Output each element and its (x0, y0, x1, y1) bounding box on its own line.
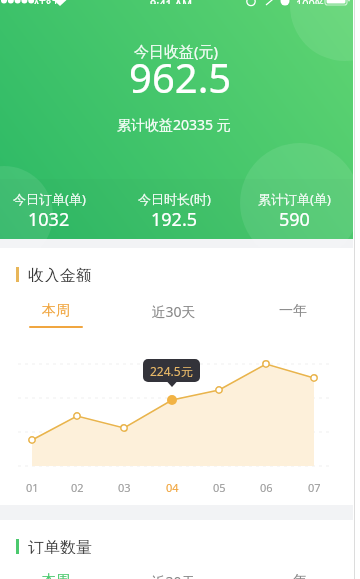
button[interactable]: 近30天 (128, 572, 218, 579)
staticText: 03 (118, 480, 131, 495)
staticText: 累计收益20335 元 (117, 115, 231, 134)
button[interactable]: 本周 (11, 302, 101, 328)
button[interactable]: 今日时长(时) (119, 190, 229, 234)
button[interactable]: 一年 (248, 572, 338, 579)
staticText: 192.5 (151, 207, 198, 232)
staticText: 本周 (42, 572, 70, 579)
button[interactable]: 近30天 (128, 302, 218, 329)
staticText: 一年 (279, 302, 307, 320)
staticText: 今日订单(单) (13, 190, 86, 208)
staticText: 07 (308, 480, 321, 495)
staticText: 订单数量 (28, 538, 92, 554)
staticText: 962.5 (129, 50, 232, 104)
staticText: 9:41 AM (150, 0, 193, 4)
staticText: 224.5元 (150, 363, 193, 379)
staticText: 近30天 (151, 572, 196, 579)
staticText: 收入金额 (28, 266, 92, 282)
staticText: 近30天 (151, 302, 196, 321)
button[interactable]: 今日订单(单) (0, 190, 104, 234)
staticText: 今日时长(时) (138, 190, 211, 208)
staticText: 一年 (279, 572, 307, 579)
staticText: 05 (213, 480, 226, 495)
staticText: 100% (296, 0, 325, 4)
staticText: 01 (26, 480, 39, 495)
staticText: 今日收益(元) (134, 41, 219, 61)
staticText: 04 (166, 480, 179, 495)
button[interactable]: 一年 (248, 302, 338, 328)
staticText: AT&T (33, 0, 59, 4)
staticText: 1032 (28, 207, 70, 232)
staticText: 590 (279, 207, 310, 232)
staticText: 本周 (42, 302, 70, 320)
staticText: 02 (71, 480, 84, 495)
staticText: 累计订单(单) (258, 190, 331, 208)
staticText: 06 (260, 480, 273, 495)
button[interactable]: 本周 (11, 572, 101, 579)
button[interactable]: 累计订单(单) (239, 190, 349, 234)
